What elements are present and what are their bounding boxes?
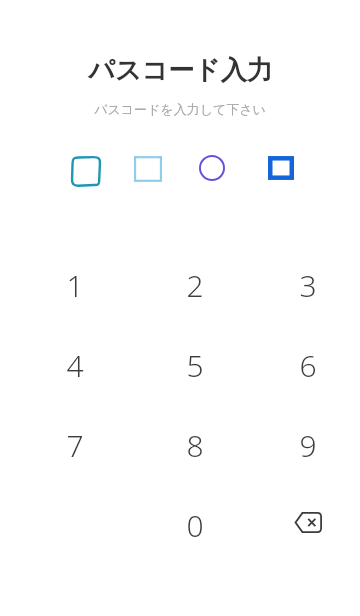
button[interactable]: 7 (15, 425, 135, 459)
button[interactable]: 9 (255, 425, 360, 459)
staticText: 5 (186, 345, 204, 379)
button[interactable] (134, 155, 162, 183)
staticText: 4 (66, 345, 84, 379)
staticText: パスコードを入力して下さい (94, 101, 266, 117)
staticText: 6 (299, 345, 317, 379)
staticText: パスコード入力 (88, 54, 273, 87)
staticText: 9 (299, 425, 317, 459)
button[interactable] (268, 155, 294, 181)
staticText: 3 (299, 265, 317, 299)
staticText: 8 (186, 425, 204, 459)
button[interactable] (199, 155, 225, 181)
staticText: 0 (186, 505, 204, 539)
staticText: 1 (66, 265, 84, 299)
button[interactable]: 3 (255, 265, 360, 299)
button[interactable]: Backspace (255, 505, 360, 539)
staticText: 2 (186, 265, 204, 299)
button[interactable] (70, 155, 102, 187)
button[interactable]: 5 (135, 345, 255, 379)
button[interactable]: 6 (255, 345, 360, 379)
staticText: 7 (66, 425, 84, 459)
button[interactable]: 1 (15, 265, 135, 299)
button[interactable]: 0 (135, 505, 255, 539)
button[interactable]: 2 (135, 265, 255, 299)
button[interactable]: 8 (135, 425, 255, 459)
button[interactable]: 4 (15, 345, 135, 379)
